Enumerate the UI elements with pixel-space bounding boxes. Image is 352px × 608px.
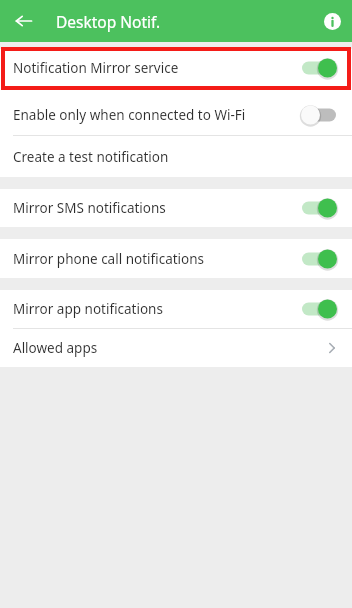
button[interactable]: Mirror SMS notifications [0, 189, 352, 227]
button[interactable]: Mirror phone call notifications [0, 239, 352, 278]
staticText: Notification Mirror service [13, 59, 296, 77]
button[interactable]: Info [318, 7, 346, 35]
button[interactable]: Back [10, 7, 38, 35]
staticText: Enable only when connected to Wi-Fi [13, 106, 296, 124]
button[interactable]: Create a test notification [0, 136, 352, 177]
button[interactable]: Notification Mirror service [0, 49, 352, 87]
other: Open allowed apps [322, 338, 342, 358]
staticText: Mirror app notifications [13, 300, 296, 318]
staticText: Mirror SMS notifications [13, 199, 296, 217]
staticText: Mirror phone call notifications [13, 250, 296, 268]
staticText: Allowed apps [13, 339, 322, 357]
button[interactable]: Mirror app notifications [0, 290, 352, 328]
staticText: Create a test notification [13, 148, 342, 166]
button[interactable]: Enable only when connected to Wi-Fi [0, 95, 352, 135]
staticText: Desktop Notif. [56, 11, 161, 32]
button[interactable]: Allowed apps [0, 329, 352, 367]
